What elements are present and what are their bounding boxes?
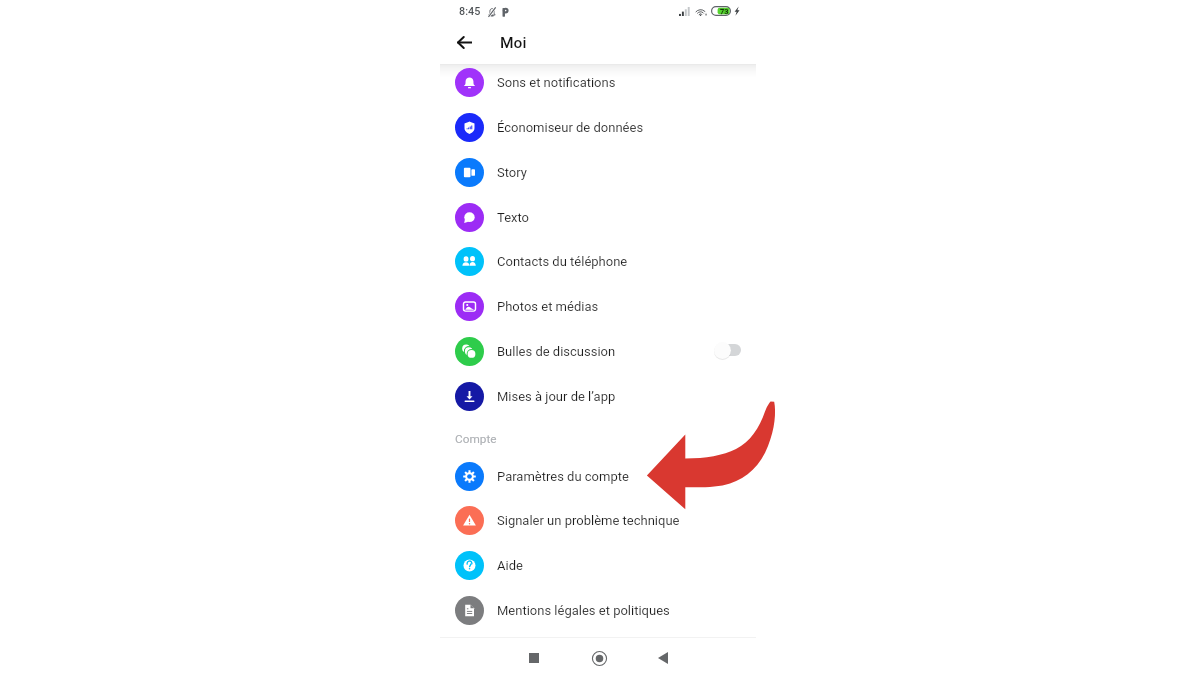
button[interactable]: Recent apps bbox=[519, 643, 549, 673]
button[interactable]: Mentions légales et politiques bbox=[440, 588, 756, 633]
staticText: Aide bbox=[497, 558, 523, 573]
staticText: 73 bbox=[720, 7, 729, 16]
staticText: Économiseur de données bbox=[497, 120, 644, 135]
button[interactable]: Aide bbox=[440, 543, 756, 588]
button[interactable]: Home bbox=[584, 643, 614, 673]
staticText: Bulles de discussion bbox=[497, 344, 616, 359]
staticText: Moi bbox=[500, 34, 527, 52]
button[interactable]: Photos et médias bbox=[440, 284, 756, 329]
button[interactable]: Contacts du téléphone bbox=[440, 239, 756, 284]
button[interactable]: Texto bbox=[440, 195, 756, 240]
staticText: Signaler un problème technique bbox=[497, 513, 680, 528]
staticText: Paramètres du compte bbox=[497, 469, 629, 484]
staticText: 8:45 bbox=[459, 5, 481, 18]
staticText: Compte bbox=[455, 432, 497, 446]
staticText: Story bbox=[497, 165, 527, 180]
staticText: Contacts du téléphone bbox=[497, 254, 628, 269]
button[interactable]: Économiseur de données bbox=[440, 105, 756, 150]
button[interactable]: Mises à jour de l’app bbox=[440, 374, 756, 419]
staticText: Mises à jour de l’app bbox=[497, 389, 616, 404]
button[interactable]: Back bbox=[446, 25, 482, 61]
button[interactable]: Bulles de discussion bbox=[714, 341, 741, 359]
staticText: Texto bbox=[497, 210, 530, 225]
other: Annotation arrow bbox=[0, 0, 1200, 675]
staticText: Mentions légales et politiques bbox=[497, 603, 670, 618]
button[interactable]: Story bbox=[440, 150, 756, 195]
button[interactable]: Bulles de discussion bbox=[440, 329, 756, 374]
button[interactable]: Back bbox=[648, 643, 678, 673]
staticText: Sons et notifications bbox=[497, 75, 616, 90]
button[interactable]: Sons et notifications bbox=[440, 60, 756, 105]
staticText: Photos et médias bbox=[497, 299, 599, 314]
button[interactable]: Signaler un problème technique bbox=[440, 498, 756, 543]
button[interactable]: Paramètres du compte bbox=[440, 454, 756, 499]
